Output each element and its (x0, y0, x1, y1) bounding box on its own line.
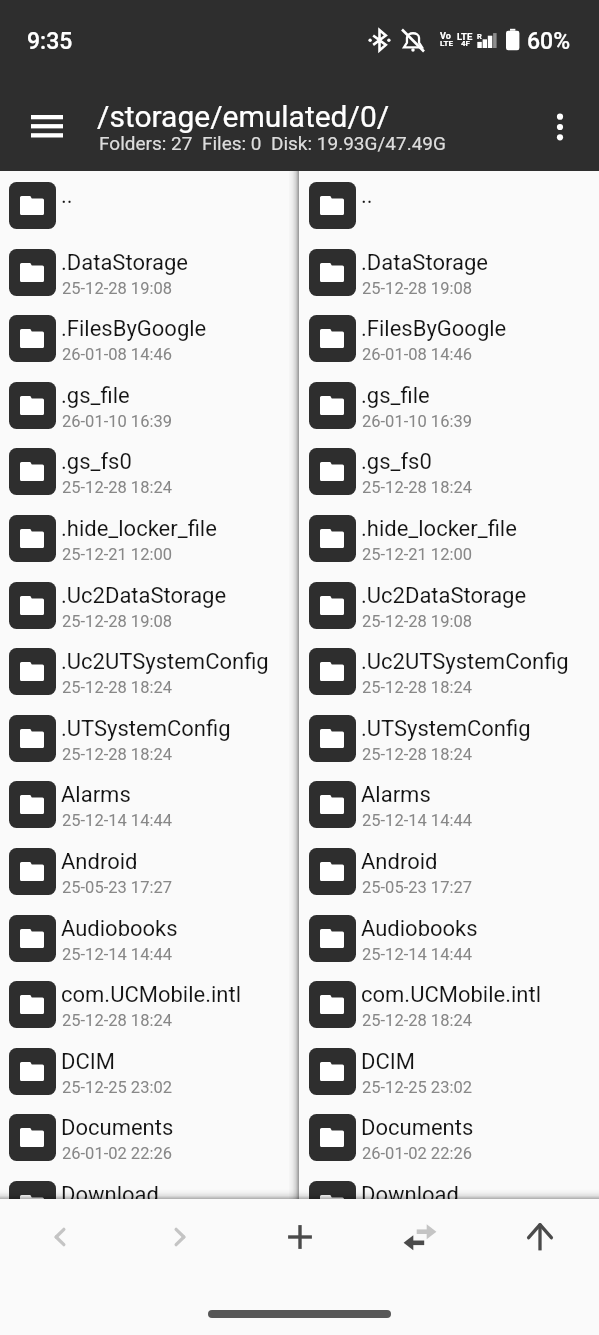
staticText: 60% (527, 28, 571, 55)
button[interactable]: .gs_file (300, 371, 599, 438)
button[interactable]: Documents (0, 1103, 289, 1170)
staticText: 26-01-02 22:26 (362, 1144, 472, 1163)
staticText: Alarms (361, 782, 431, 808)
button[interactable]: .gs_fs0 (0, 437, 289, 504)
button[interactable]: .UTSystemConfig (0, 704, 289, 771)
staticText: 25-12-14 14:44 (362, 945, 472, 964)
button[interactable]: Documents (300, 1103, 599, 1170)
button[interactable]: Android (300, 837, 599, 904)
button[interactable]: Audiobooks (300, 904, 599, 971)
staticText: R (477, 32, 482, 41)
staticText: .Uc2UTSystemConfig (361, 649, 569, 675)
button[interactable]: Android (0, 837, 289, 904)
staticText: 4F (461, 39, 470, 48)
staticText: DCIM (361, 1049, 415, 1075)
staticText: .Uc2UTSystemConfig (61, 649, 269, 675)
staticText: 9:35 (27, 28, 73, 55)
staticText: 25-12-21 12:00 (62, 545, 172, 564)
button[interactable]: .Uc2DataStorage (0, 571, 289, 638)
staticText: .gs_fs0 (61, 449, 132, 475)
staticText: Vo (440, 31, 451, 42)
staticText: .DataStorage (361, 250, 488, 276)
staticText: 25-12-28 19:08 (362, 612, 472, 631)
staticText: Android (361, 849, 438, 875)
button[interactable]: More options (536, 103, 584, 151)
button[interactable]: .FilesByGoogle (0, 304, 289, 371)
staticText: .Uc2DataStorage (61, 583, 227, 609)
button[interactable]: .Uc2UTSystemConfig (300, 637, 599, 704)
staticText: 25-12-28 18:24 (362, 678, 472, 697)
button[interactable]: .gs_fs0 (300, 437, 599, 504)
staticText: Documents (61, 1115, 174, 1141)
button[interactable]: Alarms (0, 770, 289, 837)
button[interactable]: .DataStorage (300, 238, 599, 305)
staticText: 25-12-28 19:08 (62, 612, 172, 631)
button[interactable]: Back (20, 1198, 99, 1276)
button[interactable]: com.UCMobile.intl (0, 970, 289, 1037)
staticText: LTE (457, 31, 473, 42)
staticText: 25-05-23 17:27 (362, 878, 472, 897)
staticText: 25-12-28 18:24 (62, 1011, 172, 1030)
staticText: .FilesByGoogle (61, 316, 207, 342)
staticText: .UTSystemConfig (61, 716, 231, 742)
button[interactable]: com.UCMobile.intl (300, 970, 599, 1037)
button[interactable]: Download (0, 1170, 289, 1237)
button[interactable]: .FilesByGoogle (300, 304, 599, 371)
staticText: com.UCMobile.intl (361, 982, 542, 1008)
staticText: Audiobooks (361, 916, 478, 942)
button[interactable]: .hide_locker_file (300, 504, 599, 571)
staticText: 25-12-28 18:24 (62, 478, 172, 497)
staticText: 25-12-25 23:02 (362, 1078, 472, 1097)
staticText: Folders: 27 Files: 0 Disk: 19.93G/47.49G (99, 132, 446, 154)
button[interactable]: Up one level (500, 1198, 579, 1276)
staticText: 26-01-02 22:26 (62, 1144, 172, 1163)
staticText: .UTSystemConfig (361, 716, 531, 742)
staticText: .gs_file (61, 383, 130, 409)
button[interactable]: .. (300, 171, 599, 238)
staticText: Alarms (61, 782, 131, 808)
staticText: /storage/emulated/0/ (97, 99, 390, 134)
staticText: 25-12-28 18:24 (362, 478, 472, 497)
staticText: 25-12-25 23:02 (62, 1078, 172, 1097)
staticText: 25-12-28 18:24 (62, 678, 172, 697)
button[interactable]: Swap panes (380, 1198, 459, 1276)
staticText: Download (361, 1182, 459, 1208)
button[interactable]: DCIM (300, 1037, 599, 1104)
staticText: 25-12-28 18:24 (62, 745, 172, 764)
button[interactable]: .. (0, 171, 289, 238)
button[interactable]: DCIM (0, 1037, 289, 1104)
staticText: com.UCMobile.intl (61, 982, 242, 1008)
button[interactable]: .gs_file (0, 371, 289, 438)
button[interactable]: Alarms (300, 770, 599, 837)
staticText: 25-12-14 14:44 (362, 811, 472, 830)
staticText: .gs_fs0 (361, 449, 432, 475)
staticText: .gs_file (361, 383, 430, 409)
staticText: Android (61, 849, 138, 875)
button[interactable]: Menu (16, 95, 78, 157)
staticText: .. (361, 183, 373, 209)
staticText: Documents (361, 1115, 474, 1141)
staticText: .. (61, 183, 73, 209)
staticText: 25-12-14 14:44 (62, 811, 172, 830)
button[interactable]: Download (300, 1170, 599, 1237)
button[interactable]: .Uc2DataStorage (300, 571, 599, 638)
button[interactable]: .hide_locker_file (0, 504, 289, 571)
staticText: 25-12-28 18:24 (362, 745, 472, 764)
staticText: 26-01-08 14:46 (62, 345, 172, 364)
button[interactable]: .DataStorage (0, 238, 289, 305)
staticText: .DataStorage (61, 250, 188, 276)
button[interactable]: .UTSystemConfig (300, 704, 599, 771)
button[interactable]: New folder (260, 1198, 339, 1276)
staticText: .hide_locker_file (361, 516, 517, 542)
staticText: 25-12-28 19:08 (362, 279, 472, 298)
button[interactable]: .Uc2UTSystemConfig (0, 637, 289, 704)
staticText: 25-12-14 14:44 (362, 1211, 472, 1230)
staticText: Audiobooks (61, 916, 178, 942)
staticText: DCIM (61, 1049, 115, 1075)
button[interactable]: Forward (140, 1198, 219, 1276)
staticText: Download (61, 1182, 159, 1208)
staticText: .hide_locker_file (61, 516, 217, 542)
button[interactable]: Audiobooks (0, 904, 289, 971)
staticText: 25-12-28 18:24 (362, 1011, 472, 1030)
